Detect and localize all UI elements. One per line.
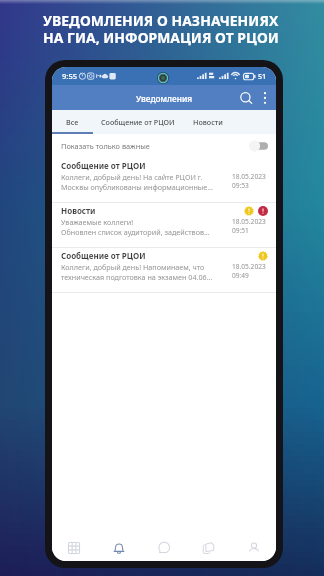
- button[interactable]: Новости: [52, 203, 276, 247]
- staticText: Все: [66, 117, 79, 127]
- button[interactable]: Все: [52, 110, 93, 134]
- button[interactable]: Сообщения: [141, 534, 186, 561]
- staticText: Сообщение от РЦОИ: [61, 160, 146, 171]
- staticText: 18.05.2023: [232, 262, 266, 271]
- staticText: Новости: [193, 117, 223, 127]
- staticText: 09:53: [232, 181, 249, 190]
- staticText: 09:51: [232, 226, 249, 235]
- staticText: 51: [258, 71, 267, 81]
- staticText: Обновлен список аудиторий, задействов…: [61, 227, 210, 237]
- staticText: Коллеги, добрый день! Напоминаем, что: [61, 262, 205, 272]
- staticText: 9:55: [62, 71, 78, 81]
- staticText: техническая подготовка на экзамен 04.06…: [61, 272, 213, 282]
- button[interactable]: Уведомления: [96, 534, 141, 561]
- staticText: Новости: [61, 205, 96, 216]
- button[interactable]: Новости: [182, 110, 234, 134]
- button[interactable]: Сообщение от РЦОИ: [52, 158, 276, 202]
- button[interactable]: Сообщение от РЦОИ: [93, 110, 182, 134]
- staticText: Коллеги, добрый день! На сайте РЦОИ г.: [61, 172, 203, 182]
- staticText: Сообщение от РЦОИ: [61, 250, 146, 261]
- button[interactable]: Сообщение от РЦОИ: [52, 248, 276, 292]
- button[interactable]: Поиск: [235, 87, 257, 109]
- button[interactable]: Главная: [52, 534, 96, 561]
- staticText: Уважаемые коллеги!: [61, 217, 134, 227]
- staticText: 09:49: [232, 271, 249, 280]
- button[interactable]: Ещё: [257, 90, 273, 106]
- button[interactable]: Профиль: [231, 534, 276, 561]
- staticText: Сообщение от РЦОИ: [101, 117, 175, 127]
- staticText: Москвы опубликованы информационные…: [61, 182, 213, 192]
- staticText: Показать только важные: [61, 141, 150, 151]
- button[interactable]: Показать только важные: [52, 134, 276, 158]
- button[interactable]: Документы: [186, 534, 231, 561]
- staticText: 18.05.2023: [232, 172, 266, 181]
- staticText: Уведомления: [136, 93, 193, 104]
- staticText: УВЕДОМЛЕНИЯ О НАЗНАЧЕНИЯХ НА ГИА, ИНФОРМ…: [43, 11, 279, 47]
- staticText: 18.05.2023: [232, 217, 266, 226]
